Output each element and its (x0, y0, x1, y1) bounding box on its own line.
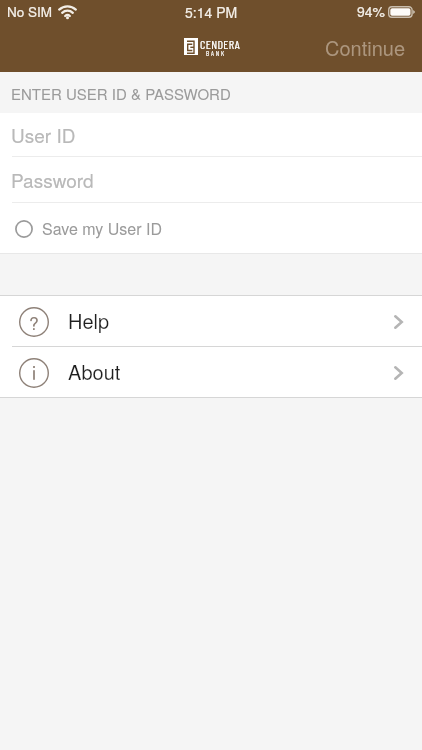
staticText: ? (29, 310, 39, 335)
staticText: ENTER USER ID & PASSWORD (11, 83, 231, 104)
button[interactable]: Save my User ID (0, 203, 422, 254)
button[interactable]: ? (0, 296, 422, 347)
staticText: Continue (325, 33, 406, 62)
button[interactable]: User ID (0, 113, 422, 156)
staticText: Password (11, 166, 94, 193)
button[interactable]: Continue (307, 26, 422, 70)
staticText: CENDERA (200, 37, 240, 51)
button[interactable]: Password (0, 157, 422, 202)
staticText: About (68, 357, 121, 386)
other: Battery 94 percent (388, 6, 415, 18)
button[interactable]: About (0, 347, 422, 398)
staticText: BANK (206, 49, 227, 57)
staticText: 5:14 PM (185, 2, 238, 22)
staticText: 94% (357, 1, 386, 21)
staticText: Save my User ID (42, 217, 162, 240)
staticText: No SIM (7, 2, 53, 21)
staticText: Help (68, 306, 110, 335)
staticText: User ID (11, 121, 76, 148)
